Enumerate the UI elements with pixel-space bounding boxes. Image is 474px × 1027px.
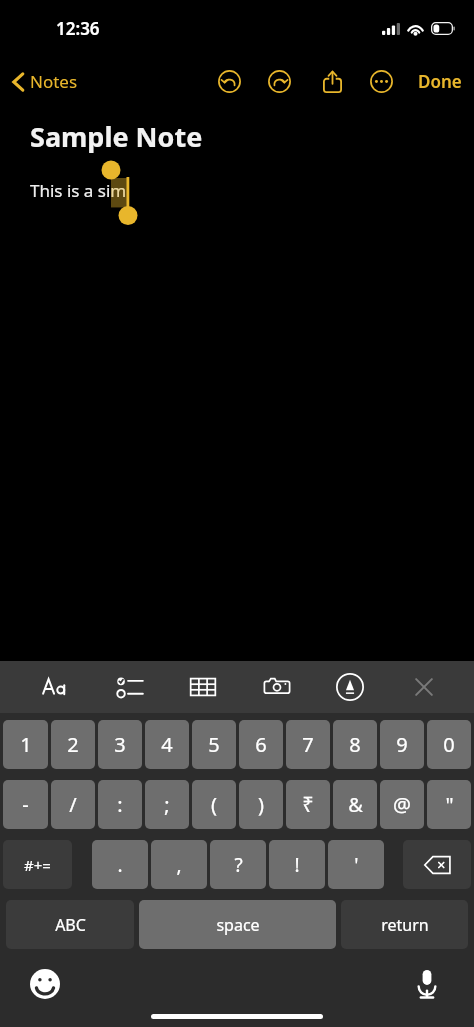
staticText: ' — [354, 852, 359, 878]
staticText: 12:36 — [56, 17, 100, 40]
button[interactable]: Format — [34, 665, 78, 709]
button[interactable]: Redo — [260, 62, 298, 100]
staticText: #+= — [24, 855, 51, 875]
button[interactable]: 9 — [380, 720, 424, 769]
button[interactable]: : — [98, 780, 142, 829]
button[interactable]: Dictate — [410, 967, 444, 1001]
staticText: return — [381, 914, 429, 936]
button[interactable]: Table — [181, 665, 225, 709]
button[interactable]: ABC — [6, 900, 134, 949]
button[interactable]: Camera — [255, 665, 299, 709]
button[interactable]: Markup — [328, 665, 372, 709]
button[interactable]: 0 — [427, 720, 471, 769]
staticText: 5 — [208, 731, 220, 758]
button[interactable]: 3 — [98, 720, 142, 769]
button[interactable]: , — [151, 840, 207, 889]
button[interactable]: 4 — [145, 720, 189, 769]
button[interactable]: Undo — [210, 62, 248, 100]
button[interactable]: Share — [312, 61, 352, 101]
staticText: : — [117, 791, 123, 818]
button[interactable]: ; — [145, 780, 189, 829]
button[interactable]: . — [92, 840, 148, 889]
staticText: - — [22, 791, 29, 818]
button[interactable]: @ — [380, 780, 424, 829]
staticText: & — [348, 791, 363, 818]
staticText: ( — [211, 791, 217, 818]
staticText: ; — [164, 791, 170, 818]
button[interactable]: 8 — [333, 720, 377, 769]
button[interactable]: - — [3, 780, 48, 829]
button[interactable]: 5 — [192, 720, 236, 769]
button[interactable]: ! — [269, 840, 325, 889]
button[interactable]: & — [333, 780, 377, 829]
button[interactable]: ) — [239, 780, 283, 829]
button[interactable]: #+= — [3, 840, 72, 889]
staticText: Done — [418, 70, 462, 93]
staticText: 7 — [302, 731, 314, 758]
staticText: / — [69, 791, 77, 818]
button[interactable]: return — [341, 900, 468, 949]
button[interactable]: 2 — [51, 720, 95, 769]
button[interactable]: Emoji — [28, 967, 62, 1001]
staticText: Notes — [30, 70, 78, 93]
staticText: 3 — [114, 731, 126, 758]
button[interactable]: 1 — [3, 720, 48, 769]
staticText: ) — [258, 791, 264, 818]
staticText: This is a sim — [30, 179, 127, 202]
staticText: 0 — [443, 731, 455, 758]
button[interactable]: space — [139, 900, 336, 949]
button[interactable]: " — [427, 780, 471, 829]
staticText: ₹ — [302, 791, 314, 818]
button[interactable]: ' — [328, 840, 384, 889]
button[interactable]: More — [362, 62, 400, 100]
staticText: 4 — [161, 731, 173, 758]
staticText: 2 — [67, 731, 79, 758]
staticText: space — [216, 914, 260, 936]
button[interactable]: ( — [192, 780, 236, 829]
staticText: , — [176, 852, 182, 878]
staticText: ? — [234, 852, 243, 878]
staticText: 8 — [349, 731, 361, 758]
staticText: Sample Note — [30, 118, 203, 155]
staticText: ABC — [55, 914, 86, 936]
staticText: " — [445, 791, 454, 818]
button[interactable]: Close — [402, 665, 446, 709]
staticText: 1 — [20, 731, 32, 758]
staticText: . — [117, 852, 123, 878]
staticText: 9 — [396, 731, 408, 758]
button[interactable]: ? — [210, 840, 266, 889]
button[interactable]: Checklist — [108, 665, 152, 709]
button[interactable]: Notes — [0, 64, 86, 99]
staticText: 6 — [255, 731, 267, 758]
staticText: @ — [393, 791, 411, 818]
staticText: ! — [294, 852, 300, 878]
button[interactable]: / — [51, 780, 95, 829]
button[interactable]: Backspace — [403, 840, 471, 889]
button[interactable]: 6 — [239, 720, 283, 769]
button[interactable]: 7 — [286, 720, 330, 769]
button[interactable]: Done — [406, 62, 474, 101]
button[interactable]: ₹ — [286, 780, 330, 829]
